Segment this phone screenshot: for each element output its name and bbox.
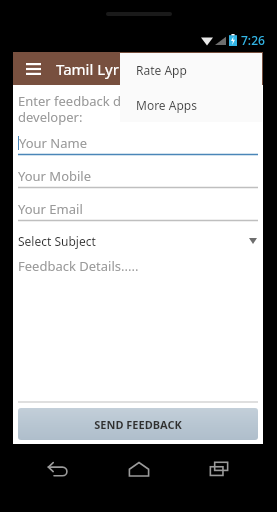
button[interactable]: Select Subject — [18, 230, 258, 252]
staticText: Rate App — [136, 62, 187, 78]
staticText: Your Email — [18, 200, 83, 218]
staticText: Select Subject — [18, 233, 96, 249]
button[interactable]: Your Mobile — [18, 164, 258, 197]
button[interactable]: Recent apps — [197, 454, 241, 484]
staticText: More Apps — [136, 97, 197, 113]
staticText: Feedback Details..... — [18, 257, 139, 275]
button[interactable]: Your Name — [18, 131, 258, 164]
button[interactable]: Feedback Details..... — [18, 255, 258, 403]
staticText: Your Name — [19, 134, 88, 152]
staticText: Your Mobile — [18, 167, 92, 185]
staticText: Enter feedback details to developer: — [18, 92, 170, 125]
staticText: 7:26 — [241, 32, 265, 48]
button[interactable]: Back — [36, 454, 80, 484]
button[interactable]: Your Email — [18, 197, 258, 230]
button[interactable]: Open navigation drawer — [13, 52, 263, 85]
button[interactable]: More Apps — [120, 87, 262, 122]
staticText: Tamil Lyrics — [56, 59, 138, 79]
button[interactable]: SEND FEEDBACK — [18, 408, 258, 440]
button[interactable]: Rate App — [120, 53, 262, 87]
button[interactable]: Open navigation drawer — [22, 58, 44, 80]
button[interactable]: Home — [117, 454, 161, 484]
staticText: SEND FEEDBACK — [94, 417, 182, 432]
